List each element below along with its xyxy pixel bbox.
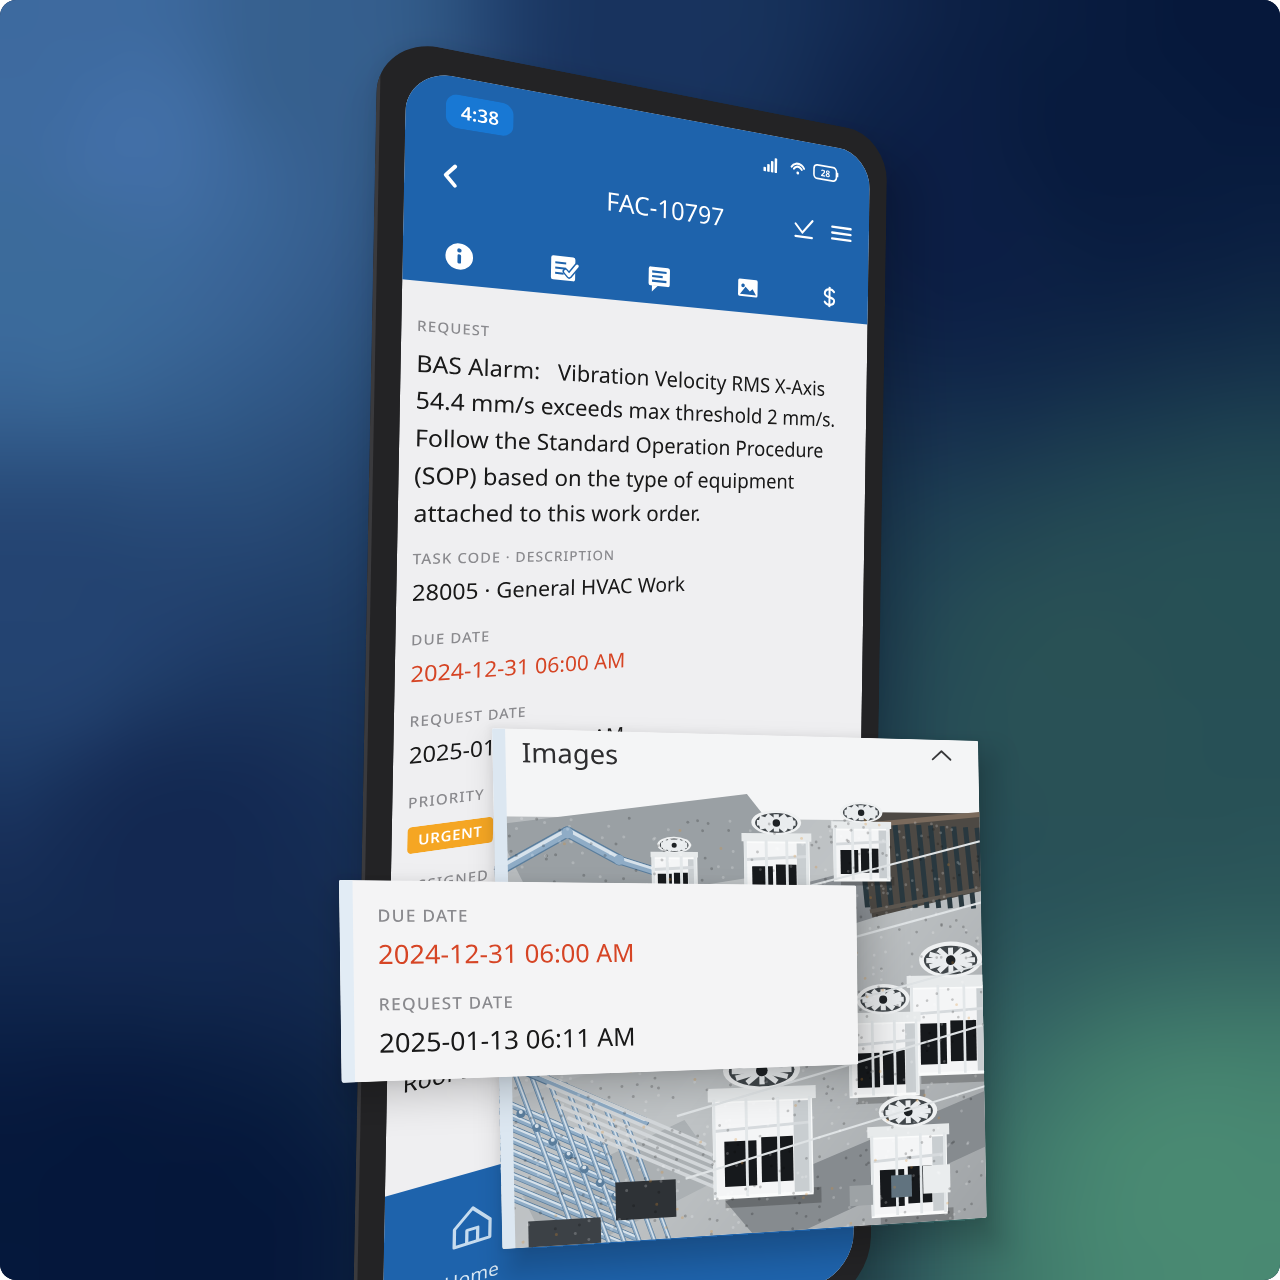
staticText: LOCATION [403, 1022, 488, 1061]
staticText: 2025-01-13 06:11 AM [409, 720, 624, 771]
button[interactable]: WO Tasks [551, 1138, 702, 1280]
staticText: Images [521, 733, 619, 771]
staticText: FAC-10797 [606, 182, 725, 233]
button[interactable]: Costs [789, 268, 868, 324]
staticText: DUE DATE [377, 904, 470, 927]
staticText: 28005 · General HVAC Work [412, 570, 686, 608]
button[interactable]: Info [402, 221, 513, 290]
staticText: REQUEST DATE [409, 702, 527, 731]
staticText: FAC [404, 980, 446, 1018]
staticText: FACILITY [405, 945, 477, 979]
staticText: TASK CODE · DESCRIPTION [412, 546, 615, 569]
staticText: DUE DATE [411, 626, 491, 650]
staticText: 2024-12-31 06:00 AM [410, 646, 626, 689]
button[interactable]: Complete [787, 208, 819, 248]
staticText: ASSIGNED TO [406, 860, 516, 897]
button[interactable]: Back [428, 151, 473, 199]
staticText: REQUEST DATE [378, 990, 515, 1016]
staticText: Roof Level 3 [402, 1040, 533, 1100]
staticText: 28 [821, 166, 831, 180]
staticText: More [750, 1162, 787, 1196]
staticText: BAS Alarm: Vibration Velocity RMS X-Axis… [413, 346, 836, 530]
button[interactable]: Menu [825, 214, 856, 253]
staticText: WO Tasks [591, 1200, 668, 1249]
button[interactable]: Tasks [512, 235, 612, 300]
staticText: Home [444, 1254, 500, 1280]
staticText: 4:38 [461, 100, 499, 131]
button[interactable]: More [699, 1100, 832, 1280]
staticText: 2025-01-13 06:11 AM [379, 1018, 636, 1060]
button[interactable]: Comments [612, 247, 705, 309]
button[interactable]: Images [704, 258, 790, 317]
staticText: 2024-12-31 06:00 AM [378, 935, 636, 971]
staticText: URGENT [418, 821, 483, 850]
button[interactable]: Home [380, 1182, 555, 1280]
staticText: PRIORITY [408, 784, 485, 813]
button[interactable]: Images [521, 733, 954, 821]
staticText: Mike Jones [405, 887, 523, 936]
staticText: REQUEST [417, 315, 491, 341]
